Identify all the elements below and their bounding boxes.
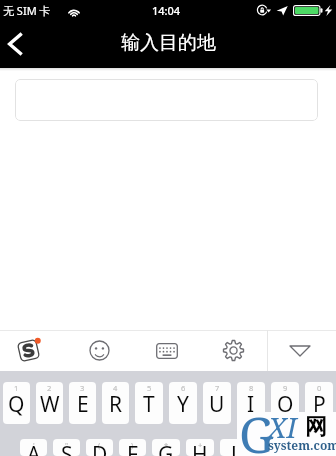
- staticText: 3: [80, 383, 85, 393]
- button[interactable]: ): [119, 439, 146, 456]
- staticText: G: [158, 440, 174, 456]
- button[interactable]: 7: [203, 382, 231, 424]
- staticText: system.com: [268, 437, 336, 453]
- staticText: A: [27, 440, 41, 456]
- button[interactable]: Settings: [215, 330, 251, 371]
- staticText: +: [198, 440, 203, 450]
- staticText: 网: [305, 413, 327, 441]
- button[interactable]: /: [254, 439, 282, 456]
- staticText: :: [301, 440, 304, 450]
- button[interactable]: ': [20, 439, 47, 456]
- button[interactable]: 8: [237, 382, 265, 424]
- staticText: Y: [177, 390, 189, 419]
- button[interactable]: 0: [305, 382, 333, 424]
- staticText: S: [61, 440, 73, 456]
- staticText: /: [267, 440, 270, 450]
- staticText: 4: [113, 383, 118, 393]
- staticText: XI: [268, 408, 297, 446]
- staticText: 0: [317, 383, 322, 393]
- button[interactable]: Emoji: [81, 330, 117, 371]
- button[interactable]: Hide keyboard: [282, 330, 318, 371]
- button[interactable]: 2: [36, 382, 63, 424]
- staticText: G: [239, 401, 274, 456]
- button[interactable]: Sogou input: [9, 330, 47, 371]
- staticText: -: [233, 440, 236, 450]
- staticText: L: [296, 440, 308, 456]
- button[interactable]: [15, 79, 318, 121]
- button[interactable]: Keyboard layout: [148, 330, 186, 371]
- button[interactable]: Back: [0, 24, 30, 64]
- staticText: 8: [249, 383, 254, 393]
- staticText: U: [209, 390, 225, 419]
- button[interactable]: 9: [271, 382, 299, 424]
- staticText: Q: [8, 390, 25, 419]
- staticText: D: [92, 440, 108, 456]
- staticText: P: [313, 390, 326, 419]
- button[interactable]: 3: [69, 382, 96, 424]
- staticText: 输入目的地: [121, 31, 216, 55]
- staticText: 7: [215, 383, 220, 393]
- staticText: (: [98, 440, 101, 450]
- button[interactable]: -: [220, 439, 248, 456]
- staticText: F: [127, 440, 138, 456]
- staticText: I: [247, 390, 255, 419]
- staticText: 2: [47, 383, 52, 393]
- button[interactable]: *: [152, 439, 180, 456]
- button[interactable]: 6: [169, 382, 197, 424]
- staticText: ": [65, 440, 69, 450]
- button[interactable]: +: [186, 439, 214, 456]
- staticText: 无 SIM 卡: [3, 3, 51, 18]
- staticText: O: [277, 390, 294, 419]
- button[interactable]: ": [53, 439, 80, 456]
- staticText: 6: [181, 383, 186, 393]
- staticText: 14:04: [152, 3, 181, 18]
- staticText: T: [143, 390, 155, 419]
- staticText: *: [164, 440, 169, 450]
- staticText: K: [262, 440, 275, 456]
- button[interactable]: (: [86, 439, 113, 456]
- staticText: ): [131, 440, 134, 450]
- button[interactable]: 4: [102, 382, 129, 424]
- staticText: 5: [147, 383, 152, 393]
- staticText: 9: [283, 383, 288, 393]
- staticText: J: [231, 440, 237, 456]
- staticText: H: [192, 440, 208, 456]
- staticText: R: [109, 390, 123, 419]
- staticText: E: [77, 390, 89, 419]
- button[interactable]: 5: [135, 382, 163, 424]
- staticText: W: [40, 390, 60, 419]
- staticText: 1: [14, 383, 19, 393]
- button[interactable]: 1: [3, 382, 30, 424]
- staticText: ': [33, 440, 35, 450]
- button[interactable]: :: [288, 439, 316, 456]
